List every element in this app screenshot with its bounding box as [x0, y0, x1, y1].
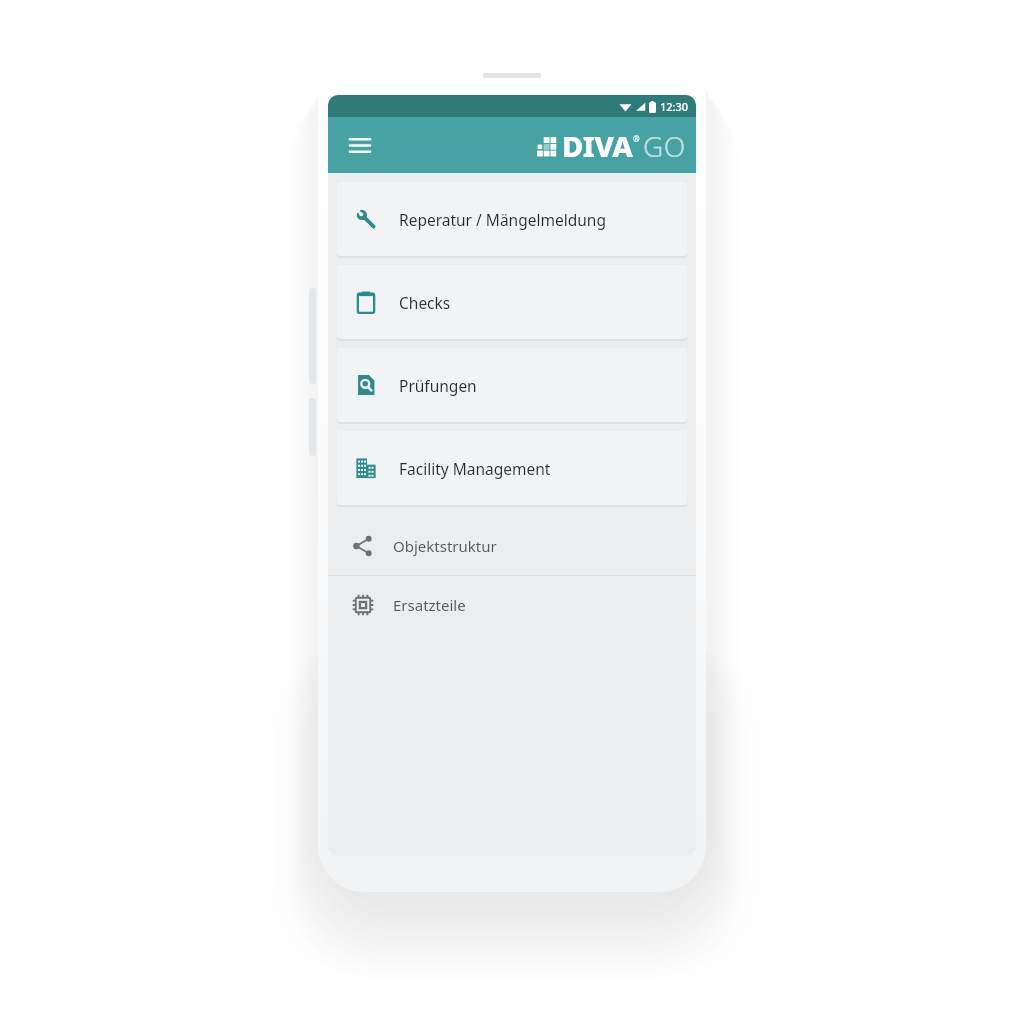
- staticText: Facility Management: [399, 458, 551, 479]
- staticText: ®: [633, 133, 640, 144]
- button[interactable]: Checks: [337, 265, 687, 339]
- staticText: Prüfungen: [399, 375, 477, 396]
- staticText: GO: [643, 127, 686, 165]
- staticText: DIVA: [562, 126, 633, 165]
- staticText: Ersatzteile: [393, 595, 466, 615]
- button[interactable]: Facility Management: [337, 431, 687, 505]
- button[interactable]: Open navigation menu: [338, 123, 382, 167]
- button[interactable]: Ersatzteile: [328, 576, 696, 634]
- button[interactable]: Objektstruktur: [328, 517, 696, 575]
- staticText: Reperatur / Mängelmeldung: [399, 209, 606, 230]
- button[interactable]: Prüfungen: [337, 348, 687, 422]
- staticText: 12:30: [660, 99, 689, 114]
- staticText: Checks: [399, 292, 451, 313]
- staticText: Objektstruktur: [393, 536, 497, 556]
- button[interactable]: Reperatur / Mängelmeldung: [337, 182, 687, 256]
